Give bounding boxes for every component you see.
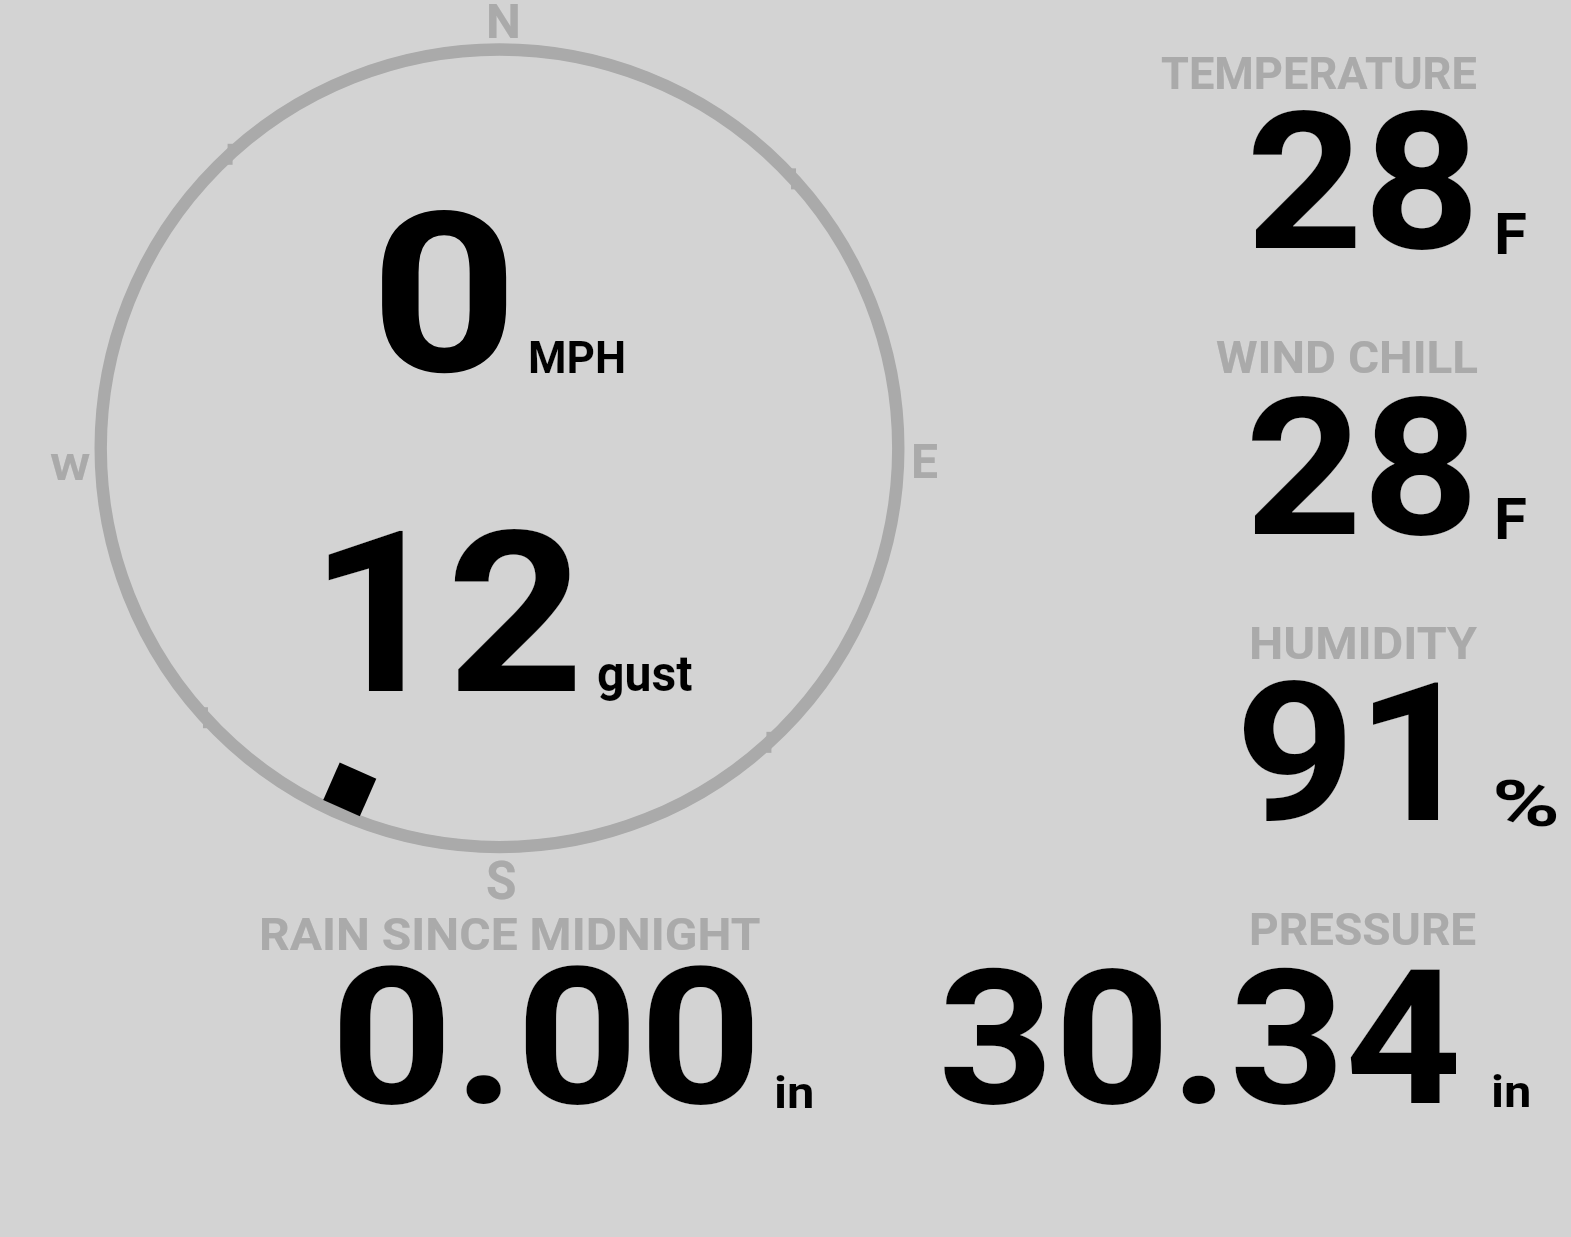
staticText: 0.00	[330, 925, 763, 1149]
staticText: in	[1491, 1066, 1532, 1118]
staticText: MPH	[528, 332, 627, 384]
button[interactable]: Pressure 30.34 in	[890, 885, 1530, 1115]
staticText: 30.34	[938, 930, 1462, 1149]
staticText: RAIN SINCE MIDNIGHT	[259, 908, 761, 961]
staticText: HUMIDITY	[1249, 619, 1478, 670]
staticText: TEMPERATURE	[1161, 47, 1477, 100]
staticText: F	[1494, 200, 1527, 268]
staticText: 28	[1246, 70, 1481, 295]
button[interactable]: Temperature 28 F	[1100, 30, 1571, 310]
staticText: E	[911, 433, 939, 490]
button[interactable]: Rain since midnight 0.00 in	[210, 885, 850, 1115]
staticText: F	[1494, 485, 1527, 553]
staticText: 12	[309, 482, 585, 746]
staticText: WIND CHILL	[1216, 333, 1479, 384]
staticText: PRESSURE	[1249, 905, 1477, 956]
staticText: 0	[370, 164, 519, 426]
staticText: 28	[1245, 356, 1480, 581]
staticText: S	[486, 850, 517, 912]
button[interactable]: Humidity 91 percent	[1100, 600, 1571, 880]
staticText: in	[774, 1067, 815, 1119]
staticText: 91	[1235, 641, 1477, 868]
staticText: %	[1492, 767, 1561, 842]
staticText: W	[50, 445, 90, 489]
button[interactable]: Wind chill 28 F	[1100, 315, 1571, 595]
staticText: N	[486, 0, 521, 50]
button[interactable]: Wind speed and direction	[60, 10, 940, 880]
staticText: gust	[597, 644, 693, 703]
